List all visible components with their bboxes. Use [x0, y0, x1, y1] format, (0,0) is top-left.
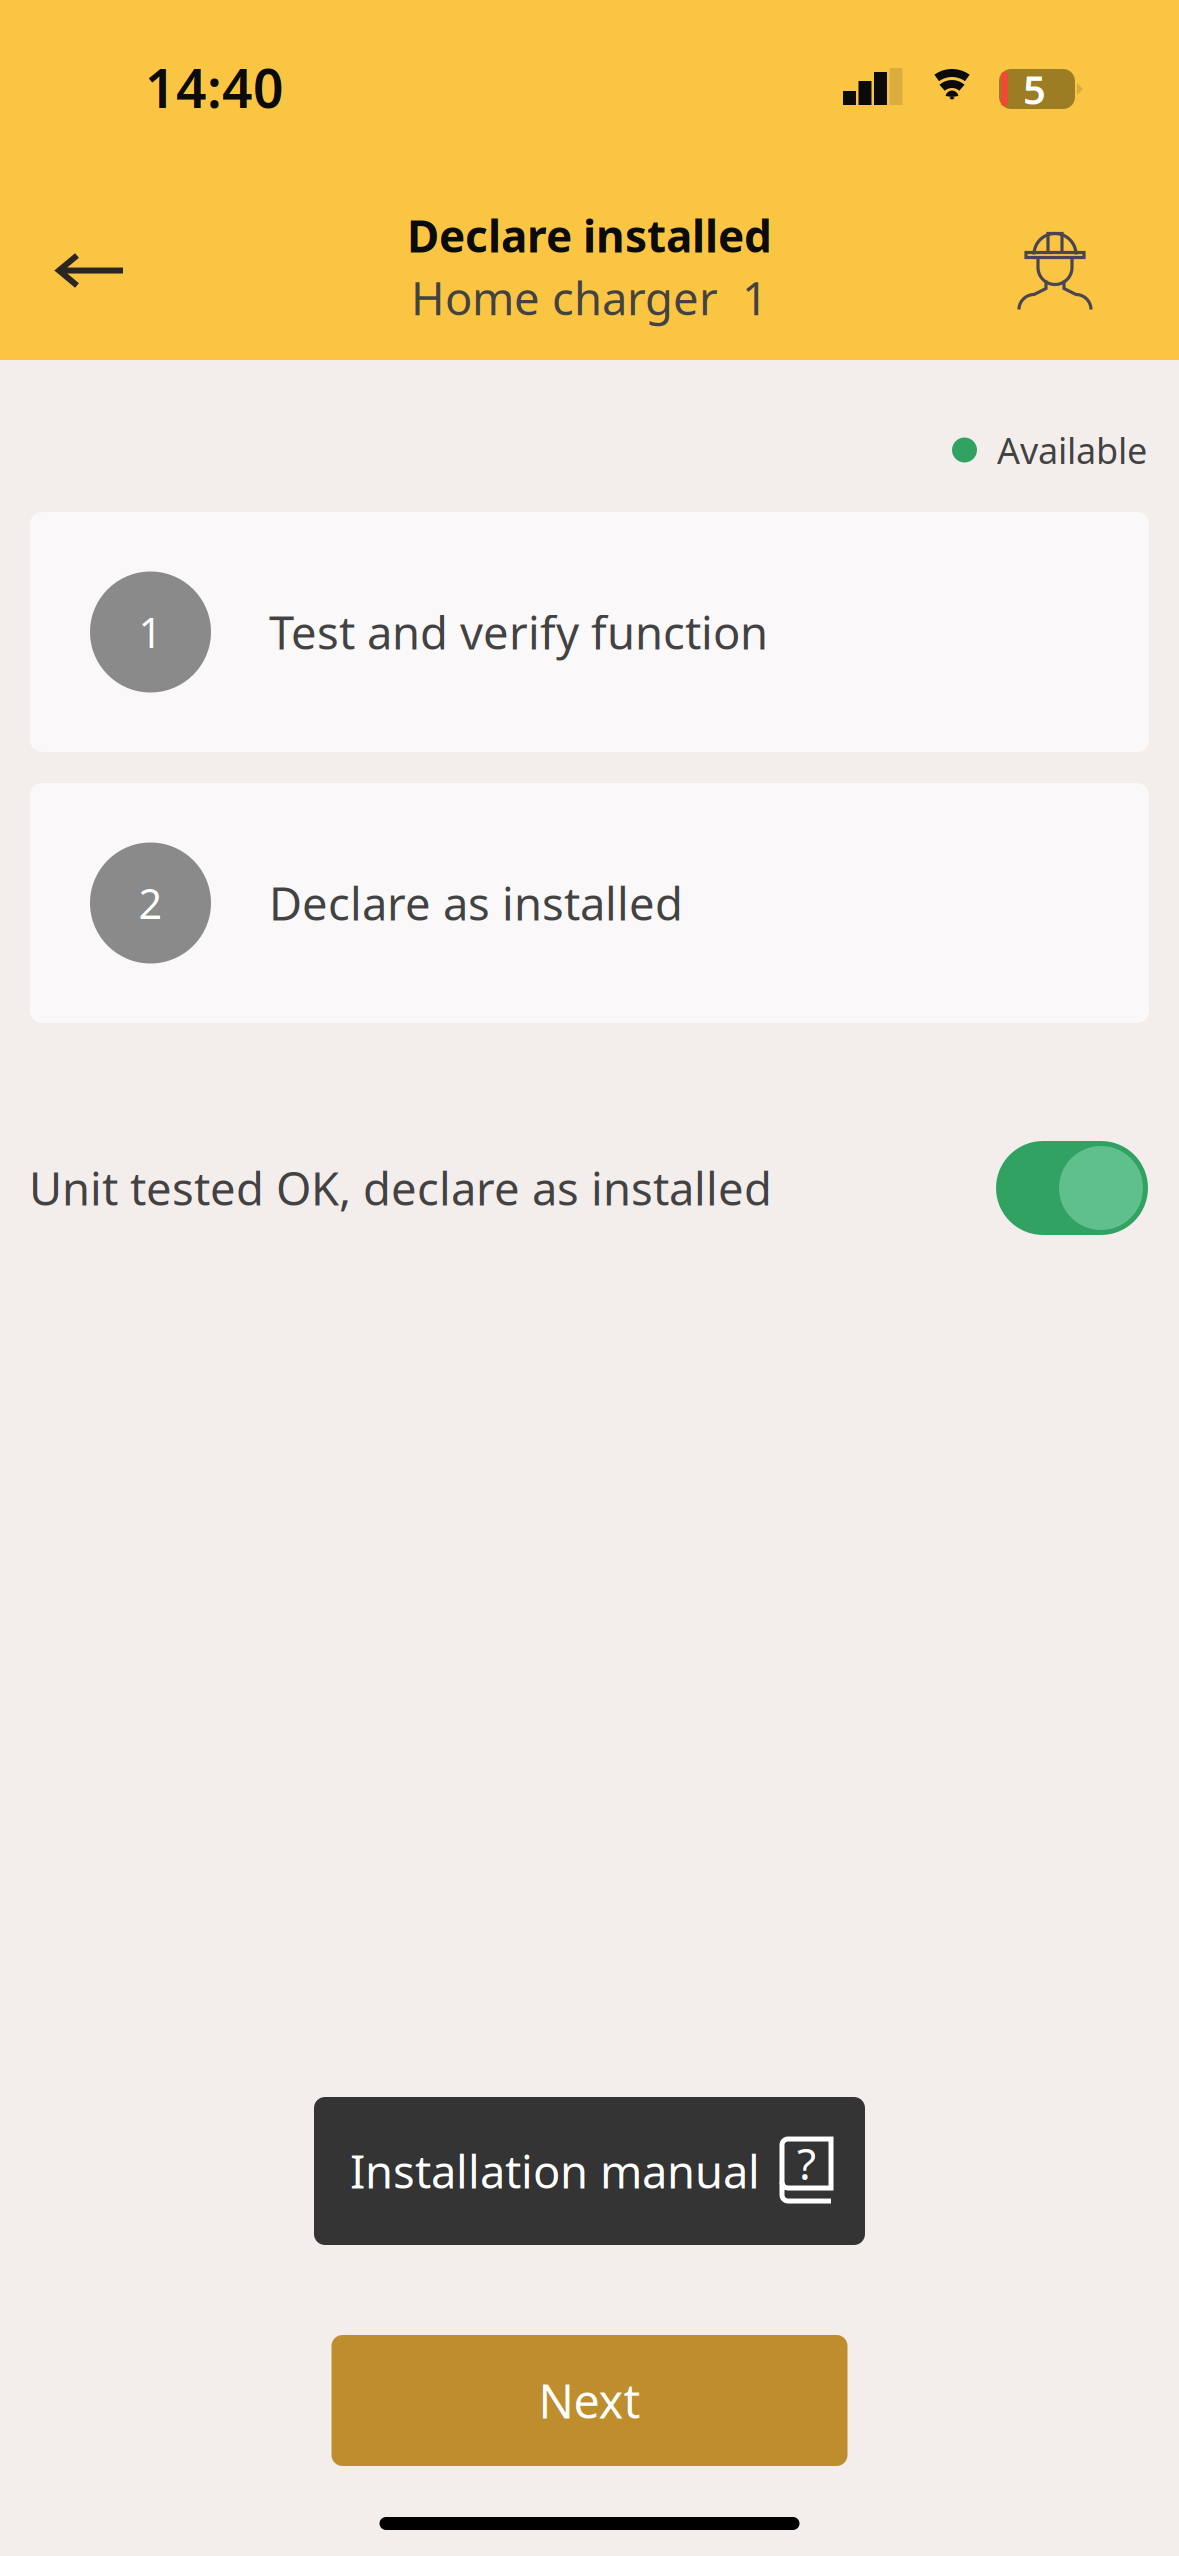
staticText: ? [797, 2134, 816, 2192]
staticText: Test and verify function [269, 602, 768, 662]
staticText: Declare installed [407, 206, 772, 265]
staticText: 5 [1023, 62, 1046, 115]
staticText: Installation manual [350, 2141, 760, 2201]
button[interactable]: 1 [30, 512, 1149, 752]
staticText: 2 [138, 876, 162, 930]
staticText: 14:40 [145, 52, 284, 123]
button[interactable]: 2 [30, 783, 1149, 1023]
staticText: Unit tested OK, declare as installed [29, 1158, 772, 1218]
button[interactable]: Installer [1005, 179, 1105, 320]
staticText: Home charger 1 [411, 268, 768, 328]
button[interactable]: Installation manual [314, 2097, 865, 2245]
staticText: Declare as installed [269, 873, 683, 933]
staticText: Available [997, 426, 1147, 474]
button[interactable]: Unit tested OK, declare as installed [996, 1141, 1148, 1235]
button[interactable]: Next [331, 2335, 847, 2466]
button[interactable]: Back [33, 179, 149, 328]
staticText: 1 [138, 605, 162, 659]
staticText: Next [538, 2369, 640, 2431]
